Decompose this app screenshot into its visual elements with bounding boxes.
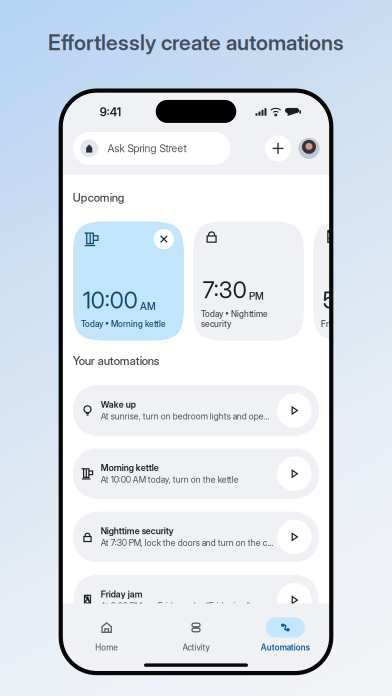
button[interactable]: Activity [151,617,241,652]
button[interactable]: 5:30 [313,221,392,341]
staticText: Today • Morning kettle [81,319,166,329]
staticText: Today • Nighttime security [201,309,268,329]
staticText: Your automations [73,354,160,368]
staticText: Friday jam [101,589,143,599]
button[interactable]: Add [262,132,294,164]
staticText: At 8:00 PM, on Fridays, play “Friday jam… [101,601,268,611]
staticText: Wake up [101,399,136,410]
button[interactable]: Home [62,617,151,652]
staticText: At 10:00 AM today, turn on the kettle [101,474,239,485]
button[interactable]: Friday jam [73,575,319,625]
staticText: 7:30 [203,276,247,304]
staticText: At 7:30 PM, lock the doors and turn on t… [101,538,274,548]
staticText: Friday • Friday jam [321,319,390,329]
button[interactable]: 10:00 [73,221,184,341]
button[interactable]: Nighttime security [73,512,319,562]
staticText: AM [140,300,156,312]
staticText: Nighttime security [101,526,174,536]
staticText: Automations [261,642,310,652]
button[interactable]: Wake up [73,385,319,436]
button[interactable]: Account [294,133,324,163]
button[interactable]: Morning kettle [73,448,319,499]
staticText: Home [95,642,118,652]
staticText: 5:30 [323,286,369,314]
staticText: 10:00 [83,286,138,314]
staticText: Activity [182,642,209,652]
button[interactable]: Ask Spring Street [73,132,231,165]
staticText: Morning kettle [101,462,159,473]
staticText: Ask Spring Street [107,142,186,155]
staticText: At sunrise, turn on bedroom lights and o… [101,411,270,422]
staticText: Effortlessly create automations [48,30,344,55]
staticText: Upcoming [73,191,125,204]
staticText: PM [249,290,264,302]
staticText: 9:41 [100,105,121,119]
button[interactable]: 7:30 [193,221,304,341]
button[interactable]: Automations [241,617,330,652]
